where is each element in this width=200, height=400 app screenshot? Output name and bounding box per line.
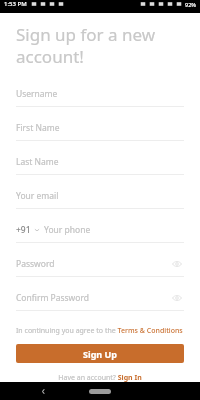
button[interactable]: Toggle password visibility xyxy=(170,291,184,305)
staticText: Password xyxy=(16,258,55,270)
staticText: Confirm Password xyxy=(16,292,89,304)
staticText: First Name xyxy=(16,122,60,134)
button[interactable]: Password xyxy=(0,252,200,286)
staticText: Your phone xyxy=(44,224,91,236)
staticText: Sign Up xyxy=(83,348,118,360)
staticText: Have an account? Sign In xyxy=(58,373,142,382)
button[interactable]: In continuing you agree to the Terms & C… xyxy=(16,326,184,336)
staticText: 1:53 PM xyxy=(4,0,27,8)
button[interactable]: Username xyxy=(0,82,200,116)
button[interactable]: Toggle password visibility xyxy=(170,257,184,271)
button[interactable]: First Name xyxy=(0,116,200,150)
staticText: Last Name xyxy=(16,156,59,168)
button[interactable]: Your email xyxy=(0,184,200,218)
button[interactable]: +91 xyxy=(0,218,200,252)
button[interactable]: Back xyxy=(36,384,50,398)
button[interactable]: Sign Up xyxy=(16,344,184,363)
staticText: Your email xyxy=(16,190,59,202)
staticText: +91 xyxy=(16,224,31,236)
button[interactable]: Confirm Password xyxy=(0,286,200,320)
button[interactable]: Last Name xyxy=(0,150,200,184)
staticText: Username xyxy=(16,88,58,100)
button[interactable]: Have an account? Sign In xyxy=(0,373,200,382)
button[interactable]: Home xyxy=(89,389,111,394)
staticText: 92% xyxy=(185,1,196,8)
staticText: Sign up for a new account! xyxy=(16,23,156,68)
staticText: In continuing you agree to the Terms & C… xyxy=(16,326,183,336)
